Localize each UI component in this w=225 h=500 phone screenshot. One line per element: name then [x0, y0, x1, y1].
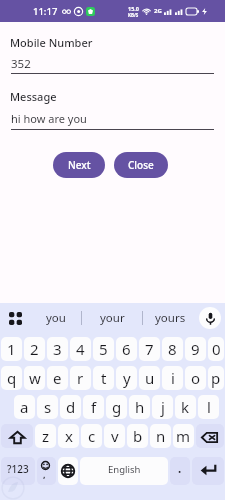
- staticText: z: [42, 426, 50, 446]
- button[interactable]: Shift: [1, 424, 33, 448]
- staticText: o: [191, 368, 201, 388]
- button[interactable]: d: [60, 395, 81, 419]
- staticText: p: [211, 368, 221, 388]
- button[interactable]: c: [81, 424, 102, 448]
- button[interactable]: Emoji: [37, 457, 56, 485]
- button[interactable]: b: [127, 424, 148, 448]
- button[interactable]: a: [14, 395, 35, 419]
- staticText: w: [29, 368, 41, 388]
- staticText: r: [77, 368, 84, 388]
- button[interactable]: Enter: [192, 457, 224, 485]
- button[interactable]: t: [93, 366, 114, 390]
- button[interactable]: r: [70, 366, 91, 390]
- button[interactable]: o: [185, 366, 206, 390]
- button[interactable]: Change language: [58, 457, 78, 485]
- staticText: c: [88, 426, 96, 446]
- button[interactable]: z: [35, 424, 56, 448]
- staticText: j: [161, 397, 165, 417]
- button[interactable]: p: [208, 366, 224, 390]
- staticText: h: [135, 397, 145, 417]
- button[interactable]: y: [116, 366, 137, 390]
- staticText: x: [65, 426, 73, 446]
- staticText: 2: [30, 339, 39, 359]
- staticText: d: [66, 397, 76, 417]
- button[interactable]: h: [129, 395, 150, 419]
- staticText: 9: [191, 339, 200, 359]
- button[interactable]: Voice input: [199, 307, 221, 329]
- staticText: k: [181, 397, 190, 417]
- staticText: v: [111, 426, 119, 446]
- button[interactable]: g: [106, 395, 127, 419]
- button[interactable]: Next: [53, 152, 105, 178]
- button[interactable]: w: [24, 366, 45, 390]
- button[interactable]: i: [162, 366, 183, 390]
- staticText: m: [176, 426, 191, 446]
- staticText: ,: [43, 468, 46, 480]
- staticText: 2G: [154, 7, 162, 15]
- staticText: Next: [68, 158, 91, 172]
- staticText: l: [207, 397, 211, 417]
- staticText: 1: [7, 339, 16, 359]
- staticText: hi how are you: [11, 111, 87, 126]
- button[interactable]: .: [170, 457, 190, 485]
- button[interactable]: 4: [70, 337, 91, 361]
- button[interactable]: 2: [24, 337, 45, 361]
- staticText: 0: [212, 339, 221, 359]
- staticText: a: [20, 397, 29, 417]
- button[interactable]: 6: [116, 337, 137, 361]
- button[interactable]: v: [104, 424, 125, 448]
- staticText: 5: [99, 339, 108, 359]
- staticText: 11:17: [33, 5, 58, 18]
- staticText: English: [108, 463, 141, 476]
- button[interactable]: 8: [162, 337, 183, 361]
- button[interactable]: Keyboard options: [0, 303, 31, 333]
- staticText: 7: [145, 339, 154, 359]
- button[interactable]: 9: [185, 337, 206, 361]
- button[interactable]: 1: [1, 337, 22, 361]
- button[interactable]: 7: [139, 337, 160, 361]
- button[interactable]: k: [175, 395, 196, 419]
- staticText: your: [100, 310, 125, 326]
- staticText: Message: [10, 89, 57, 104]
- staticText: you: [46, 310, 66, 326]
- staticText: yours: [155, 310, 186, 326]
- staticText: u: [145, 368, 155, 388]
- staticText: 352: [11, 56, 31, 72]
- button[interactable]: l: [198, 395, 219, 419]
- button[interactable]: 0: [208, 337, 224, 361]
- staticText: Mobile Number: [10, 35, 93, 50]
- staticText: n: [156, 426, 166, 446]
- button[interactable]: n: [150, 424, 171, 448]
- button[interactable]: x: [58, 424, 79, 448]
- button[interactable]: u: [139, 366, 160, 390]
- button[interactable]: 3: [47, 337, 68, 361]
- button[interactable]: 5: [93, 337, 114, 361]
- staticText: 3: [53, 339, 62, 359]
- staticText: t: [101, 368, 107, 388]
- button[interactable]: f: [83, 395, 104, 419]
- button[interactable]: Backspace: [196, 424, 224, 448]
- staticText: Close: [128, 158, 154, 172]
- staticText: i: [171, 368, 175, 388]
- button[interactable]: you: [31, 303, 81, 333]
- button[interactable]: j: [152, 395, 173, 419]
- button[interactable]: yours: [143, 303, 198, 333]
- staticText: f: [91, 397, 97, 417]
- button[interactable]: s: [37, 395, 58, 419]
- button[interactable]: ?123: [1, 457, 35, 485]
- staticText: KB/S: [128, 12, 139, 18]
- staticText: 6: [122, 339, 131, 359]
- staticText: ?123: [7, 462, 29, 476]
- staticText: 8: [168, 339, 177, 359]
- button[interactable]: e: [47, 366, 68, 390]
- staticText: 4: [76, 339, 85, 359]
- button[interactable]: your: [82, 303, 142, 333]
- staticText: 15.0: [128, 5, 139, 12]
- button[interactable]: m: [173, 424, 194, 448]
- staticText: y: [123, 368, 131, 388]
- staticText: .: [178, 461, 182, 477]
- button[interactable]: Close: [114, 152, 168, 178]
- button[interactable]: q: [1, 366, 22, 390]
- staticText: g: [112, 397, 122, 417]
- button[interactable]: English: [80, 457, 168, 485]
